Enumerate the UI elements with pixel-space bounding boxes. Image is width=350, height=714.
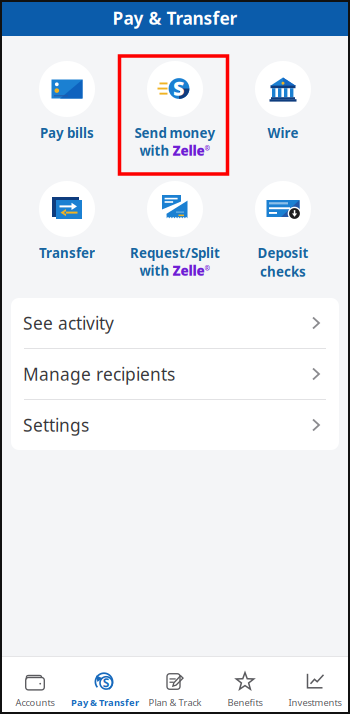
staticText: S	[173, 75, 185, 101]
staticText: ®	[204, 264, 210, 272]
button[interactable]: Pay bills	[13, 61, 121, 181]
button[interactable]: Transfer	[13, 181, 121, 301]
staticText: Pay bills	[40, 124, 94, 142]
staticText: Deposit	[257, 244, 308, 262]
button[interactable]: Plan & Track	[140, 663, 210, 714]
staticText: Request/Split	[130, 244, 220, 262]
staticText: Manage recipients	[23, 362, 175, 385]
staticText: Investments	[288, 696, 341, 709]
staticText: Wire	[267, 124, 298, 142]
staticText: with	[139, 262, 172, 279]
staticText: Settings	[23, 413, 89, 436]
staticText: with	[139, 142, 172, 159]
staticText: Zelle	[172, 262, 204, 279]
staticText: Pay & Transfer	[71, 696, 139, 709]
staticText: Zelle	[172, 142, 204, 159]
staticText: Send money	[134, 124, 215, 142]
staticText: ®	[204, 144, 210, 152]
button[interactable]: Benefits	[210, 663, 280, 714]
staticText: checks	[260, 263, 306, 280]
staticText: Benefits	[227, 696, 262, 709]
button[interactable]: S	[121, 61, 229, 181]
staticText: Pay & Transfer	[112, 6, 237, 29]
button[interactable]: Settings	[11, 400, 339, 450]
button[interactable]: Deposit	[229, 181, 337, 301]
button[interactable]: Manage recipients	[11, 349, 339, 399]
button[interactable]: See activity	[11, 298, 339, 348]
button[interactable]: Request/Split	[121, 181, 229, 301]
staticText: See activity	[23, 311, 114, 334]
staticText: Accounts	[15, 696, 54, 709]
staticText: Transfer	[39, 244, 95, 262]
button[interactable]: S	[70, 663, 140, 714]
staticText: S	[103, 675, 110, 691]
staticText: Plan & Track	[148, 696, 201, 709]
button[interactable]: Wire	[229, 61, 337, 181]
button[interactable]: Accounts	[0, 663, 70, 714]
button[interactable]: Investments	[280, 663, 350, 714]
